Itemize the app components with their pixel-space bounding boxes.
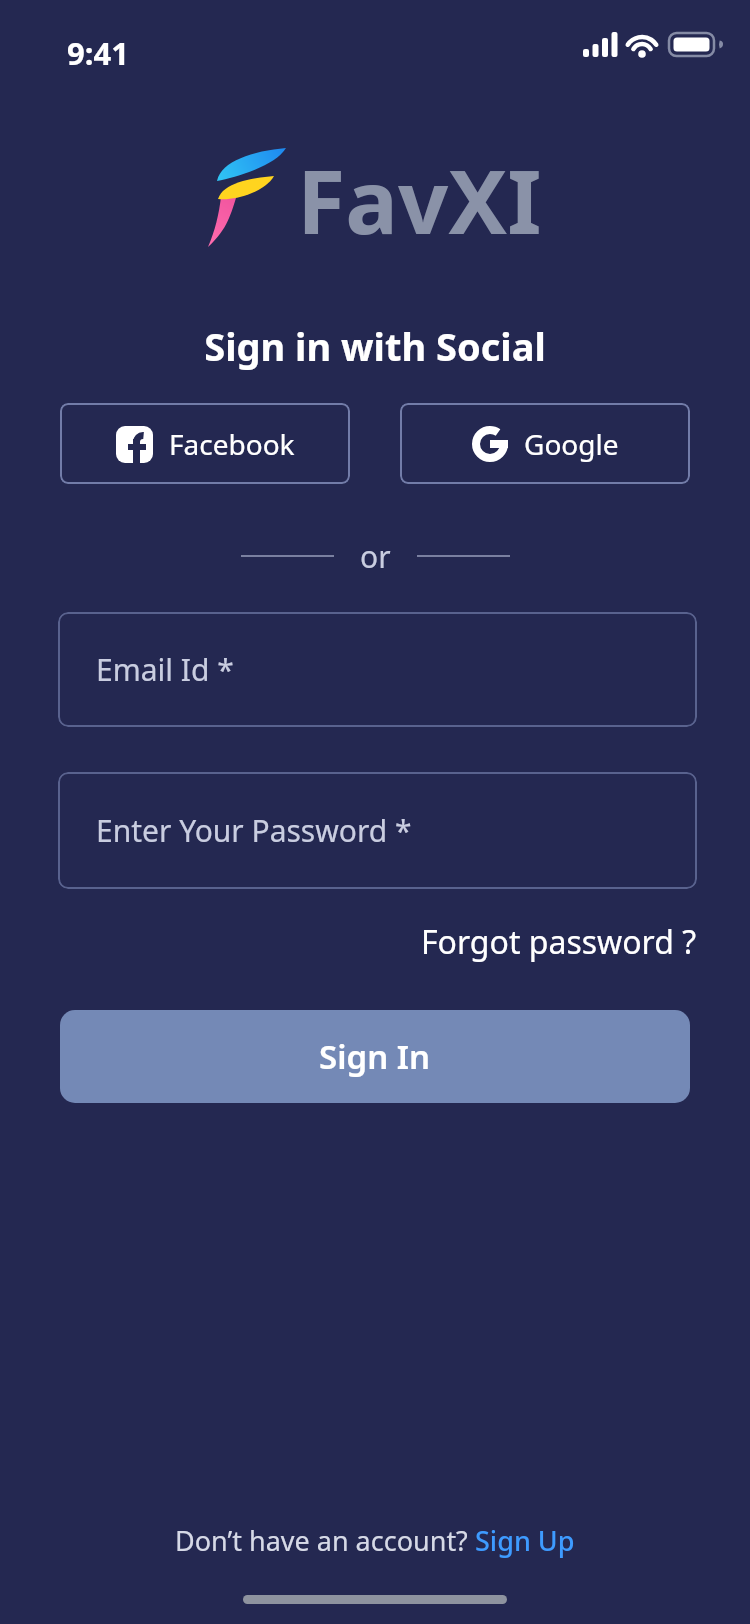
staticText: Sign In xyxy=(319,1034,431,1079)
button[interactable]: Google xyxy=(400,403,690,484)
staticText: Facebook xyxy=(169,425,295,463)
staticText: Google xyxy=(524,425,619,463)
staticText: Enter Your Password * xyxy=(96,810,412,851)
staticText: 9:41 xyxy=(67,32,129,74)
staticText: Sign Up xyxy=(475,1522,575,1559)
staticText: Don’t have an account? xyxy=(175,1522,475,1559)
button[interactable]: Forgot password ? xyxy=(421,920,697,964)
staticText: or xyxy=(360,536,391,576)
button[interactable]: Facebook xyxy=(60,403,350,484)
button[interactable]: Email Id * xyxy=(58,612,697,727)
staticText: FavXI xyxy=(297,140,542,260)
button[interactable]: Enter Your Password * xyxy=(58,772,697,889)
staticText: Email Id * xyxy=(96,649,234,690)
staticText: Forgot password ? xyxy=(421,920,697,964)
button[interactable]: Sign In xyxy=(60,1010,690,1103)
button[interactable]: Sign Up xyxy=(475,1522,575,1559)
staticText: Sign in with Social xyxy=(0,320,750,372)
